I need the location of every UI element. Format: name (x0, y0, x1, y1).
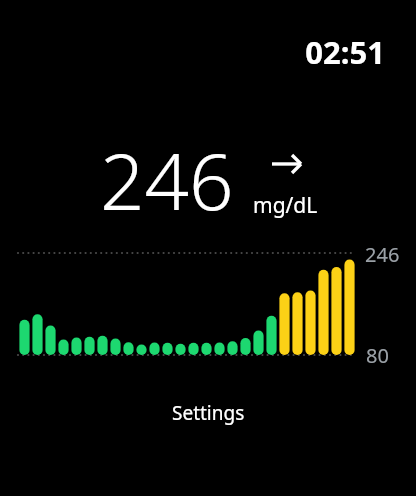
other: Trend: steady (268, 148, 306, 182)
staticText: 246 (100, 127, 234, 233)
staticText: mg/dL (253, 191, 318, 220)
staticText: 246 (365, 241, 400, 268)
staticText: 02:51 (265, 31, 385, 71)
staticText: Settings (172, 400, 245, 426)
staticText: 80 (366, 342, 389, 369)
button[interactable]: Settings (0, 392, 416, 434)
